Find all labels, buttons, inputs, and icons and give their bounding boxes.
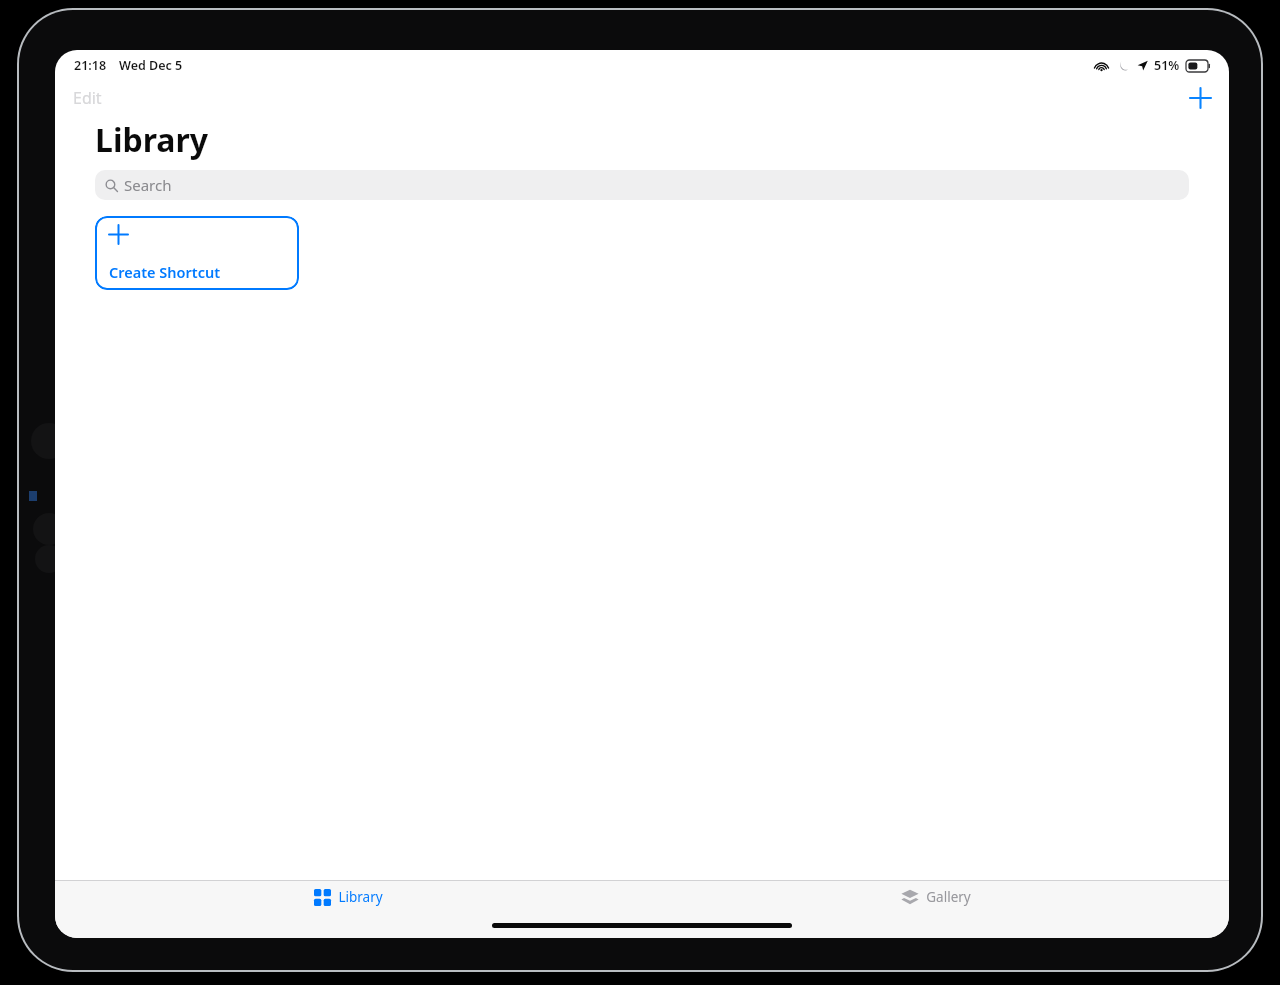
button[interactable]: Gallery [889,881,983,913]
staticText: Gallery [926,888,971,906]
button[interactable]: Library [302,881,395,913]
button[interactable]: Create Shortcut [95,216,299,290]
staticText: Library [338,888,383,906]
staticText: 51% [1154,57,1180,74]
staticText: Search [124,175,172,195]
staticText: Create Shortcut [109,262,221,282]
button[interactable]: Search [95,170,1189,200]
button[interactable]: Edit [63,82,112,114]
button[interactable]: Add shortcut [1182,80,1219,116]
staticText: Wed Dec 5 [119,57,183,74]
staticText: Library [95,118,209,162]
staticText: Edit [73,87,102,109]
staticText: 21:18 [74,57,107,74]
